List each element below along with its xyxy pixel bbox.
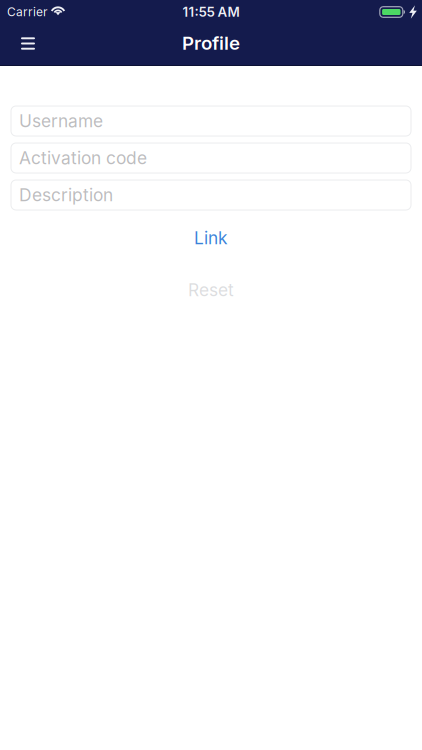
button[interactable]: Link [11,220,411,256]
button[interactable]: Reset [11,272,411,308]
button[interactable]: Username [11,106,411,136]
button[interactable]: Description [11,180,411,210]
staticText: Reset [188,279,234,300]
staticText: Carrier [7,5,48,19]
staticText: Description [19,184,113,205]
staticText: 11:55 AM [182,4,239,20]
staticText: Link [194,227,228,248]
button[interactable]: Activation code [11,143,411,173]
staticText: Profile [182,32,240,54]
staticText: Username [19,110,103,131]
button[interactable]: Menu [0,24,56,65]
staticText: Activation code [19,147,147,168]
